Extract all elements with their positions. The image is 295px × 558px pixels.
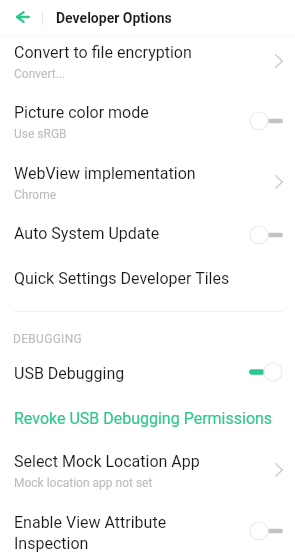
button[interactable]: USB Debugging xyxy=(0,352,295,386)
button[interactable]: Enable View Attribute Inspection xyxy=(0,498,295,558)
staticText: Revoke USB Debugging Permissions xyxy=(14,409,273,428)
staticText: DEBUGGING xyxy=(13,332,82,346)
staticText: Convert... xyxy=(14,67,66,81)
staticText: Use sRGB xyxy=(14,127,67,141)
staticText: WebView implementation xyxy=(14,164,196,183)
staticText: Enable View Attribute Inspection xyxy=(14,513,185,553)
staticText: USB Debugging xyxy=(14,364,125,383)
staticText: Chrome xyxy=(14,188,57,202)
staticText: Developer Options xyxy=(56,10,172,26)
staticText: Picture color mode xyxy=(14,103,149,122)
button[interactable]: Select Mock Location App xyxy=(0,440,295,498)
staticText: Mock location app not set xyxy=(14,476,153,490)
button[interactable]: Picture color mode xyxy=(0,98,295,158)
button[interactable]: Revoke USB Debugging Permissions xyxy=(0,397,295,431)
staticText: Quick Settings Developer Tiles xyxy=(14,269,230,288)
button[interactable]: WebView implementation xyxy=(0,158,295,219)
button[interactable]: Back xyxy=(0,0,42,36)
staticText: Auto System Update xyxy=(14,224,160,243)
staticText: Convert to file encryption xyxy=(14,43,192,62)
button[interactable]: Quick Settings Developer Tiles xyxy=(0,255,295,300)
staticText: Select Mock Location App xyxy=(14,452,200,471)
button[interactable]: Convert to file encryption xyxy=(0,37,295,98)
button[interactable]: Auto System Update xyxy=(0,210,295,247)
